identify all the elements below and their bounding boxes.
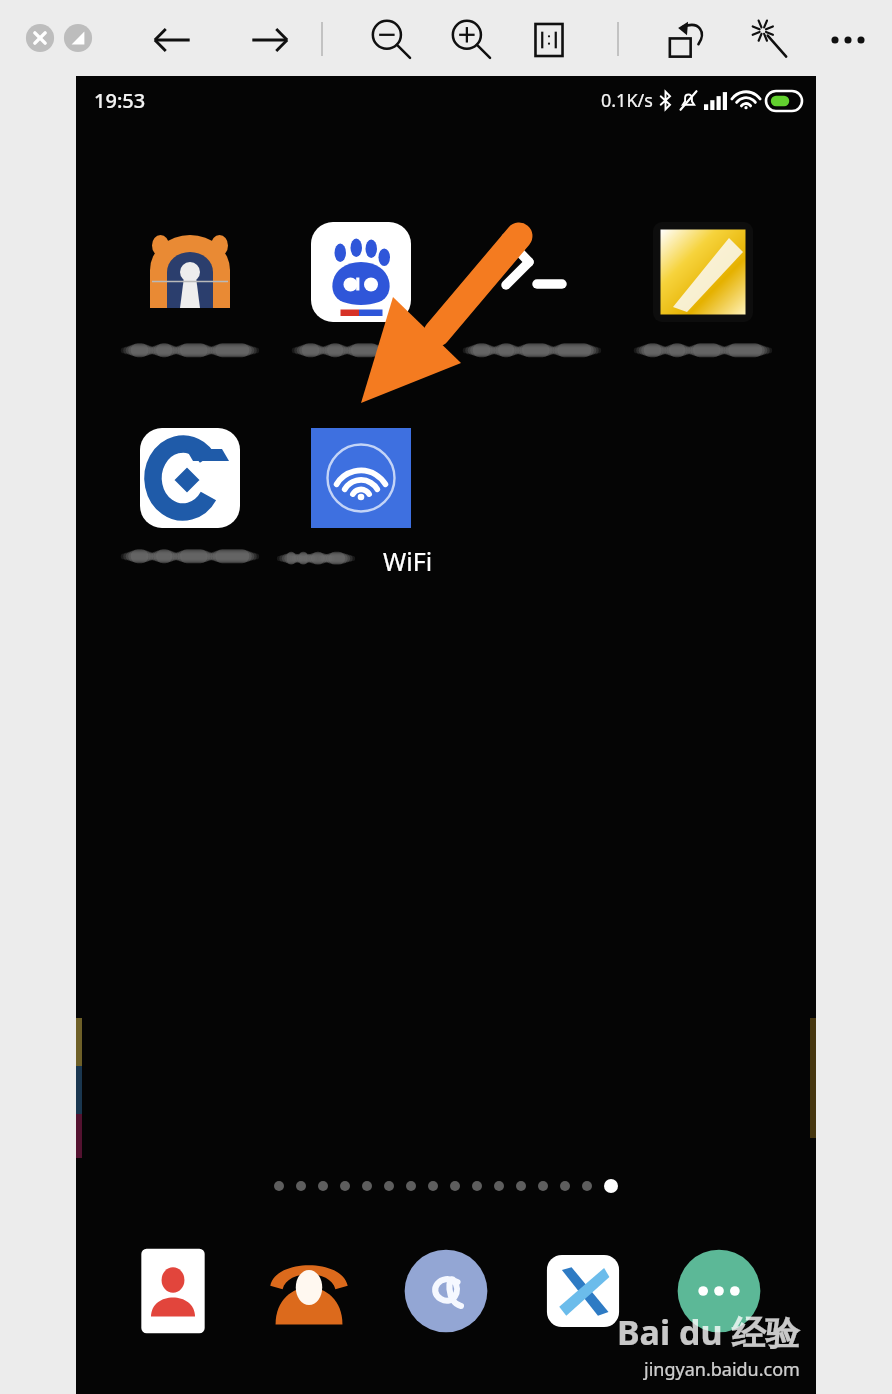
button[interactable]: Termux xyxy=(456,222,608,362)
button[interactable]: More apps xyxy=(669,1241,769,1341)
button[interactable]: Rotate xyxy=(661,14,713,66)
staticText: jingyan.baidu.com xyxy=(644,1357,800,1382)
staticText: Bai du 经验 xyxy=(617,1309,800,1355)
button[interactable]: OpenVPN xyxy=(114,222,266,362)
button[interactable]: Files xyxy=(533,1241,633,1341)
staticText: 0.1K/s xyxy=(601,88,653,113)
button[interactable]: Contacts xyxy=(123,1241,223,1341)
staticText: 19:53 xyxy=(94,87,146,114)
button[interactable]: Forward xyxy=(244,14,296,66)
button[interactable]: Baidu xyxy=(285,222,437,362)
button[interactable]: Actual size xyxy=(523,14,575,66)
button[interactable]: Gallery xyxy=(627,222,779,362)
button[interactable]: Enhance xyxy=(742,14,794,66)
button[interactable]: Phone xyxy=(259,1241,359,1341)
staticText: WiFi xyxy=(383,544,433,572)
button[interactable]: CCB Bank xyxy=(114,428,266,568)
button[interactable]: More options xyxy=(822,14,874,66)
button[interactable]: Zoom in xyxy=(444,14,496,66)
button[interactable]: Browser xyxy=(396,1241,496,1341)
button[interactable]: Close xyxy=(24,22,56,54)
button[interactable]: Back xyxy=(146,14,198,66)
button[interactable]: WiFi xyxy=(285,428,437,572)
button[interactable]: Block xyxy=(62,22,94,54)
button[interactable]: Zoom out xyxy=(364,14,416,66)
